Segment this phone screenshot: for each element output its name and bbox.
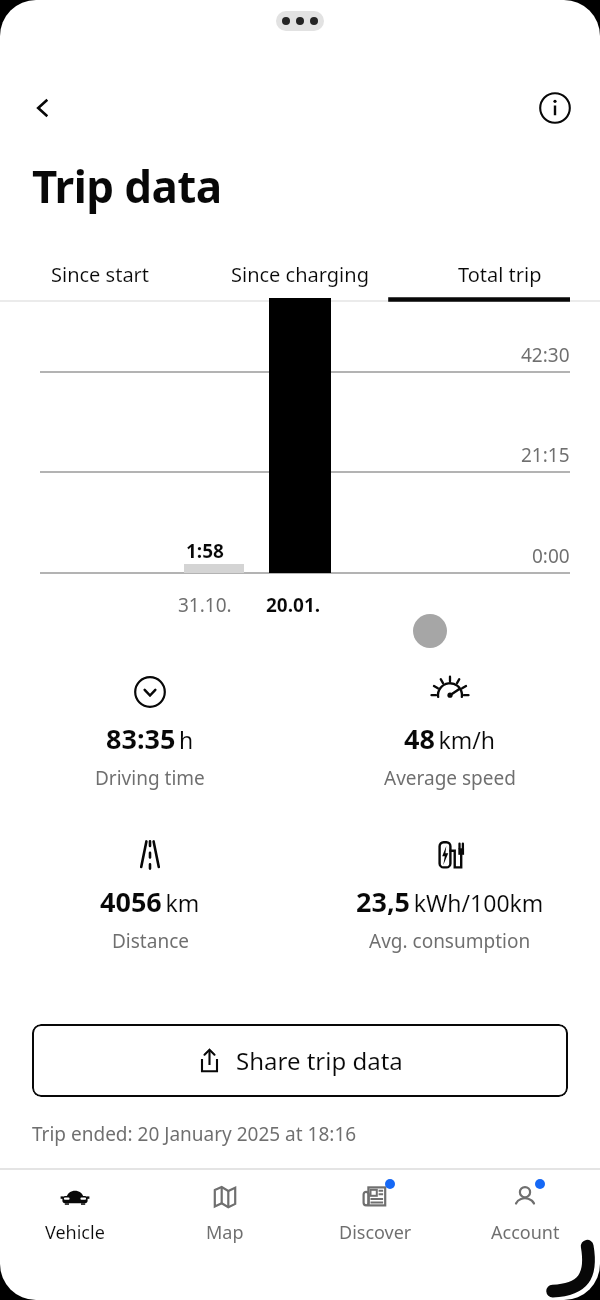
staticText: 31.10. [178, 592, 232, 618]
button[interactable]: 4056 km [0, 835, 300, 954]
button[interactable]: Discover [300, 1170, 450, 1254]
staticText: Avg. consumption [369, 928, 531, 954]
button[interactable]: Since charging [200, 246, 400, 302]
staticText: Average speed [384, 765, 516, 791]
staticText: 21:15 [521, 442, 570, 468]
staticText: Share trip data [236, 1044, 403, 1077]
staticText: 23,5 kWh/100km [356, 883, 544, 920]
staticText: 20.01. [266, 592, 321, 618]
staticText: 0:00 [532, 543, 570, 569]
staticText: 48 km/h [404, 720, 496, 757]
staticText: Discover [339, 1220, 412, 1245]
button[interactable]: 83:35 h [0, 672, 300, 791]
button[interactable]: Vehicle [0, 1170, 150, 1254]
staticText: Distance [112, 928, 189, 954]
staticText: 42:30 [521, 342, 570, 368]
button[interactable]: 23,5 kWh/100km [300, 835, 600, 954]
staticText: Vehicle [45, 1220, 105, 1245]
staticText: Account [491, 1220, 560, 1245]
button[interactable]: Information [532, 85, 578, 131]
staticText: Map [206, 1220, 244, 1245]
staticText: 4056 km [100, 883, 200, 920]
button[interactable]: Map [150, 1170, 300, 1254]
staticText: 83:35 h [106, 720, 194, 757]
staticText: Since charging [231, 261, 369, 288]
button[interactable]: Share trip data [32, 1024, 568, 1097]
button[interactable]: 48 km/h [300, 672, 600, 791]
staticText: Driving time [95, 765, 205, 791]
staticText: Total trip [458, 261, 542, 288]
button[interactable]: Total trip [400, 246, 600, 302]
staticText: 1:58 [186, 538, 224, 564]
button[interactable]: Since start [0, 246, 200, 302]
staticText: Trip data [32, 156, 222, 216]
button[interactable]: Back [20, 85, 66, 131]
staticText: Since start [51, 261, 150, 288]
staticText: Trip ended: 20 January 2025 at 18:16 [32, 1121, 357, 1147]
button[interactable]: Account [450, 1170, 600, 1254]
